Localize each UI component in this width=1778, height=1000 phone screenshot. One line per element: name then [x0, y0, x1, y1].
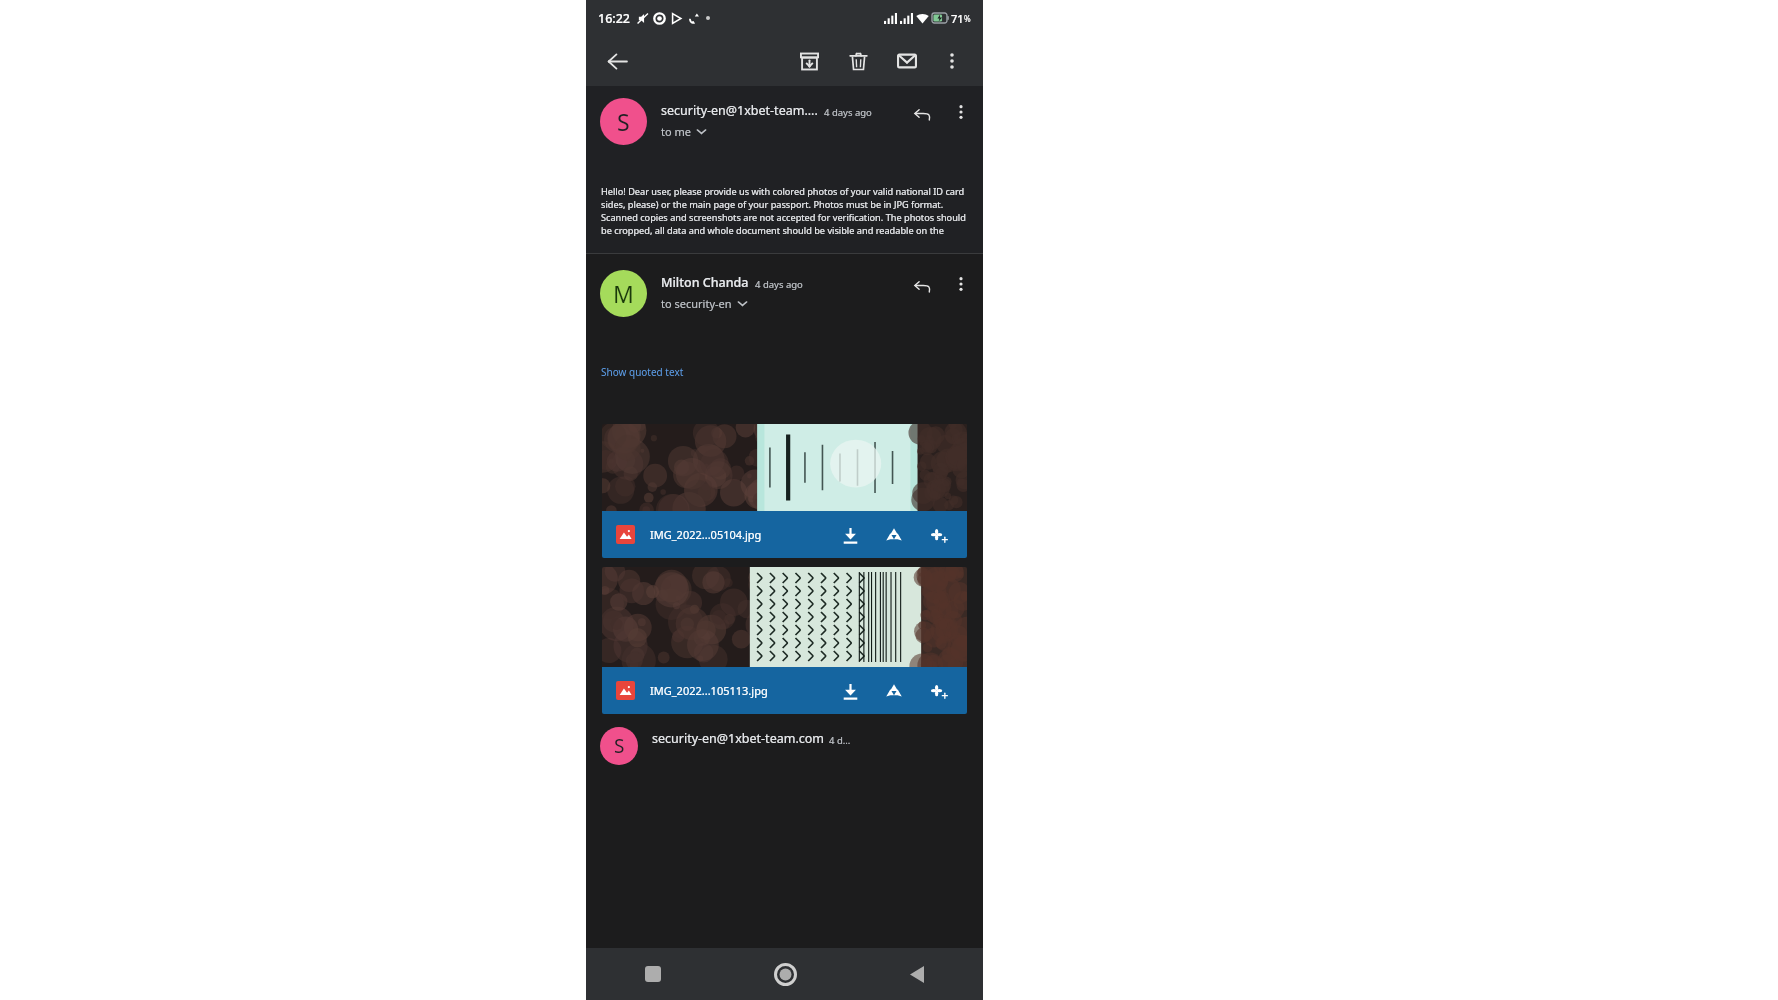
button[interactable]: S	[586, 92, 983, 151]
button[interactable]: Recent apps	[586, 948, 719, 1000]
button[interactable]: Reply	[907, 98, 937, 128]
button[interactable]: Back	[851, 948, 983, 1000]
staticText: Scanned copies and screenshots are not a…	[601, 211, 968, 224]
staticText: security-en@1xbet-team....	[661, 102, 818, 119]
staticText: be cropped, all data and whole document …	[601, 224, 968, 237]
staticText: security-en@1xbet-team.com	[652, 730, 824, 747]
staticText: 4 d...	[829, 734, 851, 747]
button[interactable]: S	[586, 727, 983, 765]
button[interactable]: Archive	[791, 43, 827, 79]
button[interactable]: to security-en	[661, 296, 748, 311]
staticText: %	[964, 13, 971, 24]
button[interactable]: to me	[661, 124, 707, 139]
button[interactable]: More options	[935, 44, 969, 78]
staticText: Milton Chanda	[661, 274, 749, 291]
staticText: 4 days ago	[824, 106, 872, 119]
button[interactable]: Mark unread	[889, 43, 925, 79]
staticText: S	[614, 733, 625, 759]
staticText: sides, please) or the main page of your …	[601, 198, 944, 211]
button[interactable]: Delete	[840, 43, 876, 79]
button[interactable]: IMG_2022...05104.jpg	[602, 424, 967, 558]
button[interactable]: More options	[947, 270, 975, 298]
staticText: 4 days ago	[755, 278, 803, 291]
button[interactable]: M	[600, 270, 647, 317]
staticText: to security-en	[661, 296, 732, 311]
button[interactable]: Save to Drive	[879, 676, 909, 706]
staticText: 71	[951, 11, 964, 26]
staticText: IMG_2022...05104.jpg	[650, 527, 835, 542]
staticText: to me	[661, 124, 691, 139]
button[interactable]: Reply	[907, 270, 937, 300]
button[interactable]: Back	[600, 44, 634, 78]
button[interactable]: Home	[719, 948, 851, 1000]
button[interactable]: Show quoted text	[601, 365, 684, 379]
staticText: 16:22	[598, 10, 631, 27]
button[interactable]: Save to Drive	[879, 520, 909, 550]
button[interactable]: Add to Photos	[923, 520, 953, 550]
button[interactable]: M	[586, 264, 983, 323]
staticText: IMG_2022...105113.jpg	[650, 683, 835, 698]
staticText: S	[617, 106, 630, 137]
button[interactable]: More options	[947, 98, 975, 126]
button[interactable]: S	[600, 98, 647, 145]
button[interactable]: Add to Photos	[923, 676, 953, 706]
staticText: Hello! Dear user, please provide us with…	[601, 185, 968, 198]
button[interactable]: Download	[835, 676, 865, 706]
staticText: Show quoted text	[601, 365, 684, 379]
button[interactable]: IMG_2022...105113.jpg	[602, 567, 967, 714]
button[interactable]: Download	[835, 520, 865, 550]
staticText: M	[613, 278, 634, 309]
